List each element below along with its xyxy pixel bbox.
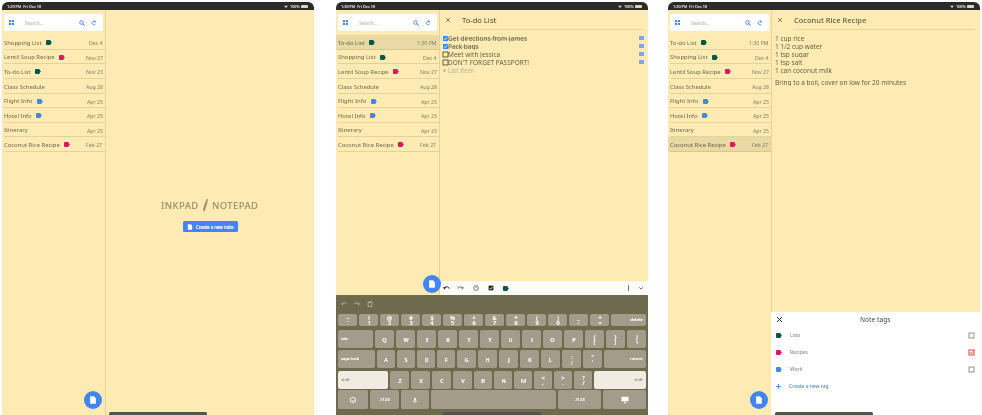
button[interactable]: Redo bbox=[457, 284, 465, 292]
button[interactable]: S bbox=[397, 350, 415, 368]
button[interactable]: Sync bbox=[756, 19, 764, 27]
button[interactable]: Dictate bbox=[401, 390, 429, 409]
button[interactable]: Hotel Info bbox=[336, 108, 439, 123]
button[interactable]: Itinerary bbox=[336, 123, 439, 137]
button[interactable]: To-do List bbox=[2, 64, 105, 79]
button[interactable]: Recipes bbox=[771, 344, 980, 361]
button[interactable]: Create a new note bbox=[84, 391, 102, 409]
button[interactable]: To-do List bbox=[336, 35, 439, 50]
button[interactable]: Hotel Info bbox=[668, 108, 771, 123]
button[interactable]: Reorder bbox=[639, 60, 644, 64]
button[interactable]: Close bbox=[775, 315, 784, 324]
button[interactable]: K bbox=[520, 350, 539, 368]
button[interactable]: Reorder bbox=[639, 52, 644, 56]
button[interactable]: } ] bbox=[606, 330, 625, 348]
button[interactable]: Emoji bbox=[338, 390, 368, 409]
button[interactable]: Create a new note bbox=[750, 391, 768, 409]
button[interactable]: W bbox=[396, 330, 415, 348]
button[interactable]: I bbox=[522, 330, 541, 348]
button[interactable]: .?123 bbox=[558, 390, 601, 409]
button[interactable]: C bbox=[432, 371, 451, 389]
button[interactable]: return bbox=[604, 350, 646, 368]
button[interactable]: .?123 bbox=[370, 390, 399, 409]
button[interactable]: E bbox=[417, 330, 436, 348]
button[interactable]: Close bbox=[775, 15, 784, 24]
button[interactable]: Sync bbox=[424, 19, 432, 27]
button[interactable]: Sync bbox=[90, 19, 98, 27]
button[interactable]: M bbox=[514, 371, 532, 389]
button[interactable]: Menu bbox=[338, 14, 437, 31]
button[interactable]: Reorder bbox=[639, 44, 644, 48]
button[interactable]: Checklist bbox=[487, 284, 495, 292]
button[interactable]: G bbox=[457, 350, 476, 368]
button[interactable]: Coconut Rice Recipe bbox=[2, 137, 105, 152]
button[interactable]: Collapse bbox=[637, 284, 645, 292]
button[interactable]: List item bbox=[440, 66, 648, 74]
button[interactable]: * 8 bbox=[506, 314, 525, 326]
button[interactable]: A bbox=[377, 350, 395, 368]
button[interactable]: + = bbox=[590, 314, 609, 326]
button[interactable]: Class Schedule bbox=[336, 79, 439, 94]
button[interactable]: & 7 bbox=[485, 314, 504, 326]
button[interactable]: Close bbox=[443, 15, 452, 24]
button[interactable]: Menu bbox=[670, 14, 769, 31]
button[interactable]: T bbox=[459, 330, 478, 348]
button[interactable]: # 3 bbox=[401, 314, 420, 326]
button[interactable]: B bbox=[474, 371, 492, 389]
button[interactable]: DON'T FORGET PASSPORT! bbox=[440, 58, 648, 66]
button[interactable]: Flight Info bbox=[2, 94, 105, 108]
button[interactable]: % 5 bbox=[443, 314, 462, 326]
button[interactable]: Reorder bbox=[639, 36, 644, 40]
button[interactable]: Work bbox=[771, 361, 980, 378]
button[interactable]: Flight Info bbox=[336, 94, 439, 108]
button[interactable]: Coconut Rice Recipe bbox=[668, 137, 771, 152]
button[interactable]: Undo bbox=[339, 299, 348, 308]
button[interactable]: V bbox=[453, 371, 472, 389]
button[interactable]: Lentil Soup Recipe bbox=[2, 50, 105, 64]
button[interactable]: Search bbox=[412, 19, 420, 27]
button[interactable]: Reminder bbox=[472, 284, 480, 292]
button[interactable]: ) 0 bbox=[548, 314, 567, 326]
button[interactable]: Shopping List bbox=[336, 50, 439, 64]
button[interactable]: Search bbox=[744, 19, 752, 27]
button[interactable]: Search bbox=[78, 19, 86, 27]
button[interactable]: { [ bbox=[585, 330, 604, 348]
button[interactable]: P bbox=[564, 330, 583, 348]
button[interactable]: ~ ` bbox=[338, 314, 357, 326]
button[interactable]: ( 9 bbox=[527, 314, 546, 326]
button[interactable]: Hotel Info bbox=[2, 108, 105, 123]
button[interactable]: Flight Info bbox=[668, 94, 771, 108]
button[interactable]: Pack bags bbox=[440, 42, 648, 50]
button[interactable]: O bbox=[543, 330, 562, 348]
button[interactable]: Shopping List bbox=[668, 50, 771, 64]
button[interactable]: > . bbox=[554, 371, 572, 389]
button[interactable]: ! 1 bbox=[359, 314, 378, 326]
button[interactable]: Menu bbox=[4, 14, 103, 31]
button[interactable]: @ 2 bbox=[380, 314, 399, 326]
button[interactable]: $ 4 bbox=[422, 314, 441, 326]
button[interactable]: Q bbox=[375, 330, 394, 348]
button[interactable]: caps lock bbox=[338, 350, 375, 368]
button[interactable]: N bbox=[494, 371, 512, 389]
button[interactable]: tab bbox=[338, 330, 373, 348]
button[interactable]: Itinerary bbox=[668, 123, 771, 137]
button[interactable]: D bbox=[417, 350, 435, 368]
button[interactable]: Y bbox=[480, 330, 499, 348]
button[interactable]: ? / bbox=[574, 371, 592, 389]
button[interactable]: Create a new note bbox=[423, 275, 441, 293]
button[interactable]: U bbox=[501, 330, 520, 348]
button[interactable]: shift bbox=[338, 371, 388, 389]
button[interactable]: Z bbox=[390, 371, 409, 389]
button[interactable]: " ' bbox=[583, 350, 602, 368]
button[interactable]: Create a new note bbox=[183, 221, 238, 232]
button[interactable]: Hide keyboard bbox=[603, 390, 646, 409]
button[interactable]: Redo bbox=[352, 299, 361, 308]
button[interactable]: H bbox=[478, 350, 497, 368]
button[interactable]: Create a new tag bbox=[771, 378, 980, 394]
button[interactable]: < , bbox=[534, 371, 552, 389]
button[interactable]: Lentil Soup Recipe bbox=[336, 64, 439, 79]
button[interactable]: : ; bbox=[562, 350, 581, 368]
button[interactable]: Undo bbox=[442, 284, 450, 292]
button[interactable]: Shopping List bbox=[2, 35, 105, 50]
button[interactable]: ^ 6 bbox=[464, 314, 483, 326]
